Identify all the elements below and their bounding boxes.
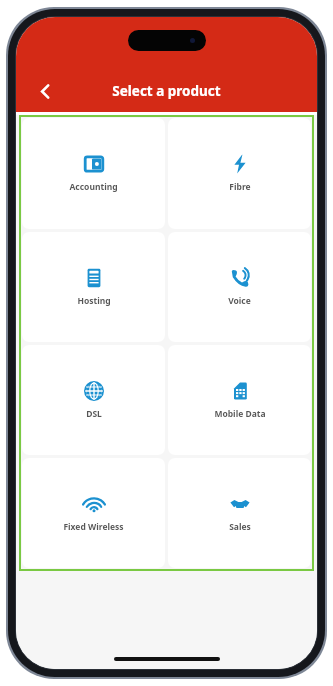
staticText: Voice: [228, 295, 251, 307]
button[interactable]: Fixed Wireless: [22, 458, 165, 568]
button[interactable]: Mobile Data: [168, 345, 311, 455]
button[interactable]: Sales: [168, 458, 311, 568]
button[interactable]: DSL: [22, 345, 165, 455]
staticText: Mobile Data: [214, 408, 266, 420]
staticText: Fixed Wireless: [63, 521, 124, 533]
staticText: Hosting: [77, 295, 111, 307]
staticText: Fibre: [229, 181, 251, 193]
button[interactable]: Fibre: [168, 118, 311, 229]
button[interactable]: Voice: [168, 232, 311, 342]
staticText: DSL: [86, 408, 102, 420]
staticText: Accounting: [69, 181, 118, 193]
button[interactable]: Hosting: [22, 232, 165, 342]
button[interactable]: Accounting: [22, 118, 165, 229]
staticText: Sales: [229, 521, 251, 533]
button[interactable]: Back: [28, 74, 62, 108]
staticText: Select a product: [112, 82, 221, 100]
